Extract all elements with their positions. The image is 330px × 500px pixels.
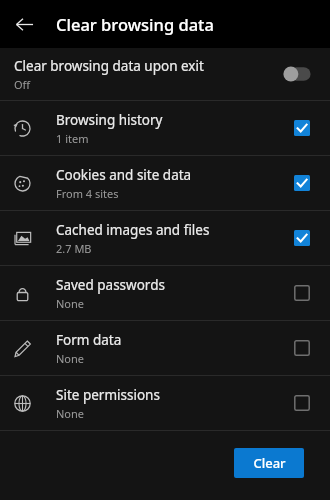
button[interactable]: Form data — [0, 321, 330, 375]
staticText: From 4 sites — [56, 186, 119, 201]
button[interactable]: Cookies and site data — [0, 156, 330, 210]
button[interactable]: Clear — [234, 448, 304, 478]
staticText: Form data — [56, 331, 122, 349]
staticText: Browsing history — [56, 111, 163, 129]
button[interactable]: Browsing history — [0, 101, 330, 155]
button[interactable]: Saved passwords — [0, 266, 330, 320]
button[interactable]: Cookies and site data selected — [290, 171, 314, 195]
button[interactable]: Form data not selected — [290, 336, 314, 360]
button[interactable]: Back — [8, 8, 40, 40]
staticText: Clear — [253, 454, 286, 472]
button[interactable]: Cached images and files — [0, 211, 330, 265]
staticText: None — [56, 406, 85, 421]
staticText: 2.7 MB — [56, 241, 92, 256]
button[interactable]: Cached images and files selected — [290, 226, 314, 250]
staticText: 1 item — [56, 131, 89, 146]
button[interactable]: Browsing history selected — [290, 116, 314, 140]
staticText: None — [56, 351, 85, 366]
button[interactable]: Site permissions — [0, 376, 330, 430]
staticText: None — [56, 296, 85, 311]
button[interactable]: Saved passwords not selected — [290, 281, 314, 305]
button[interactable]: Site permissions not selected — [290, 391, 314, 415]
staticText: Off — [14, 77, 31, 92]
button[interactable]: Clear browsing data upon exit — [0, 48, 330, 100]
staticText: Clear browsing data upon exit — [14, 57, 204, 75]
staticText: Cached images and files — [56, 221, 210, 239]
staticText: Saved passwords — [56, 276, 165, 294]
staticText: Cookies and site data — [56, 166, 192, 184]
staticText: Clear browsing data — [56, 13, 214, 35]
staticText: Site permissions — [56, 386, 160, 404]
